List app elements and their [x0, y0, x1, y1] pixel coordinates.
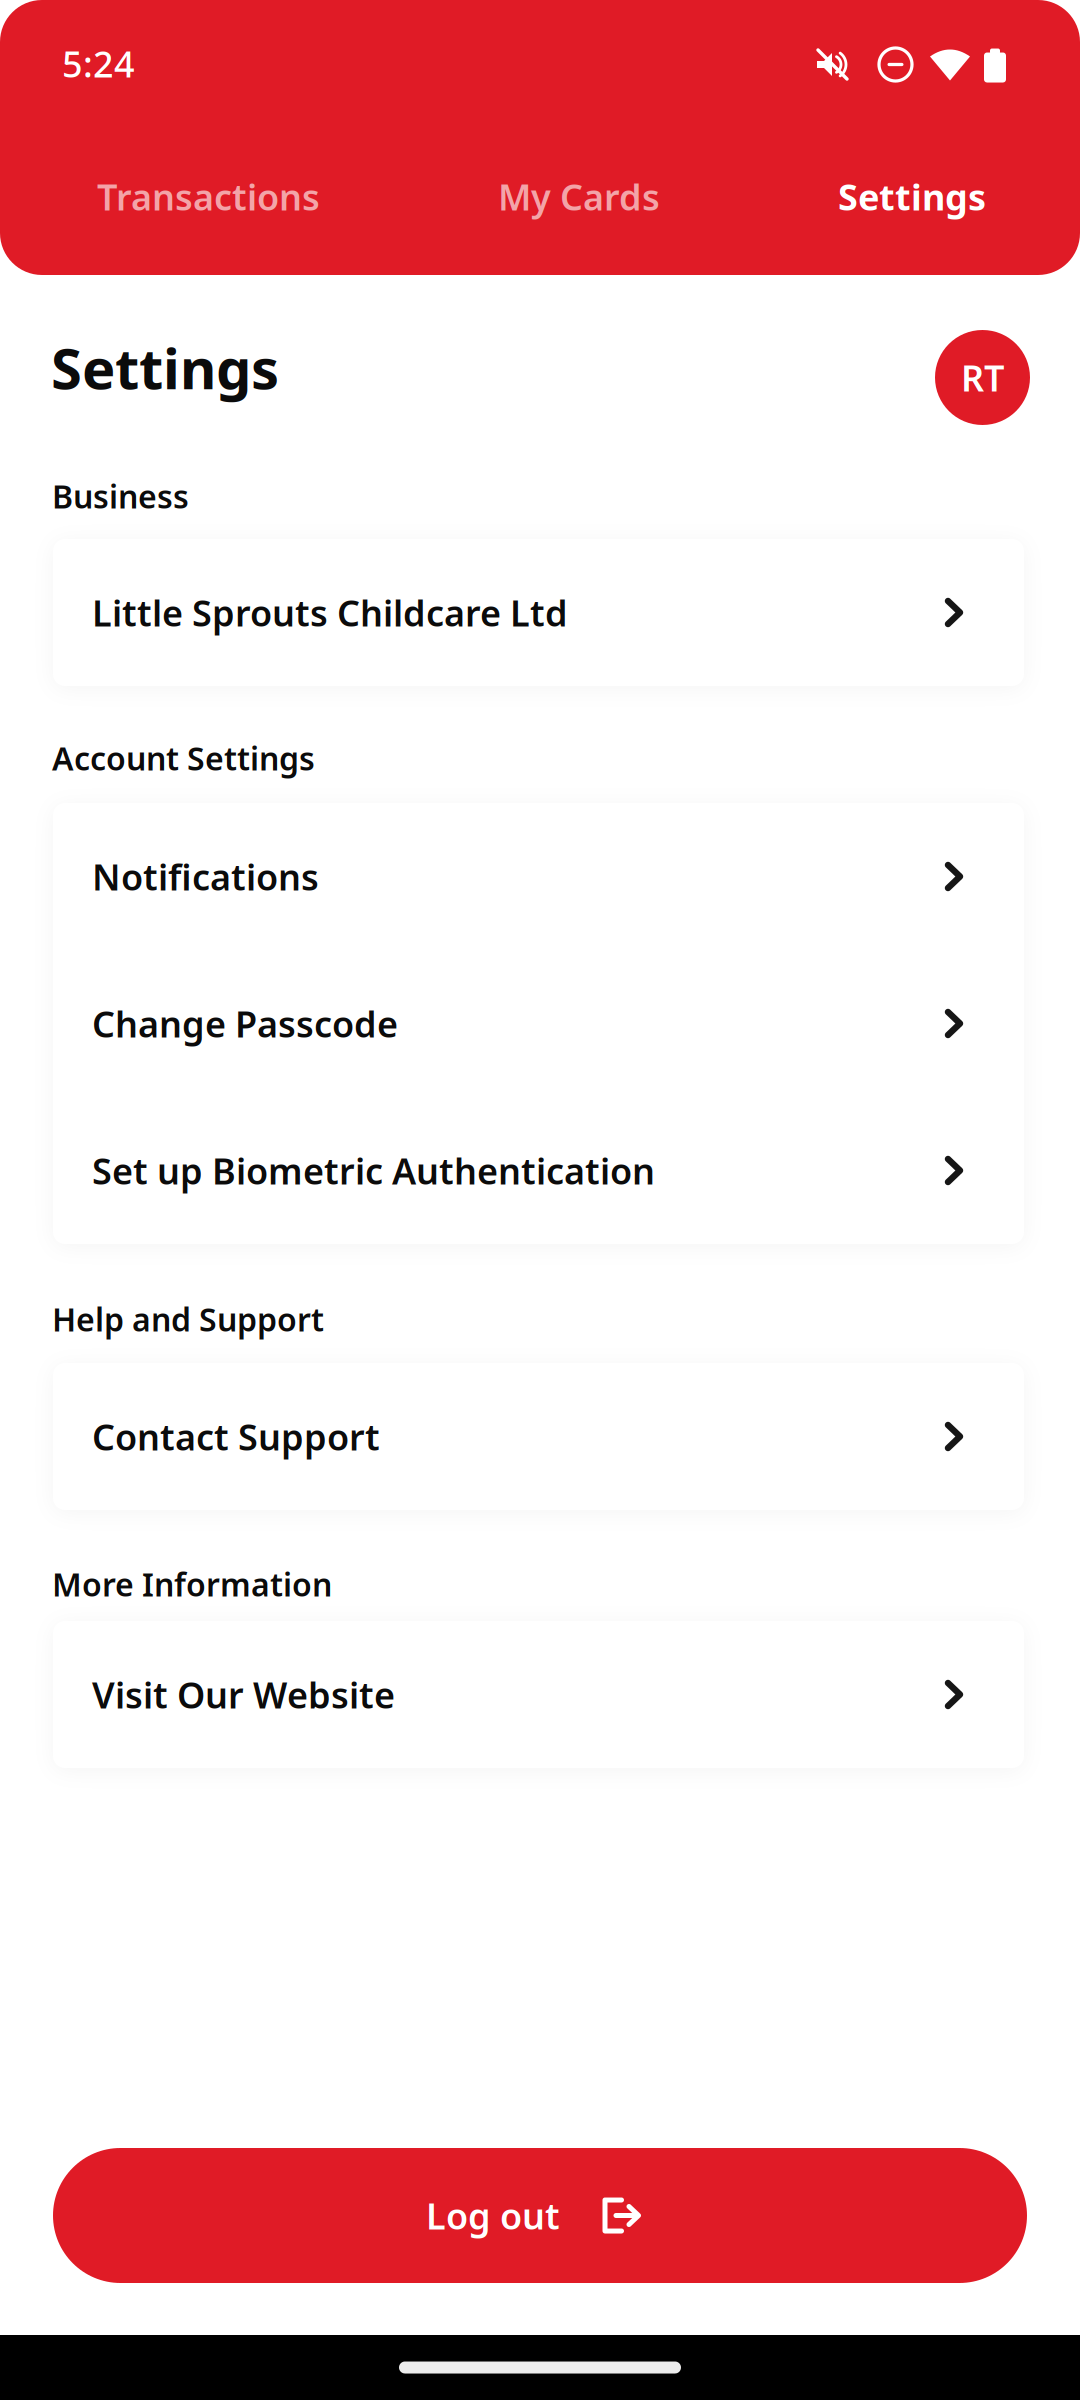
staticText: Little Sprouts Childcare Ltd [92, 589, 568, 636]
button[interactable]: Contact Support [53, 1363, 1024, 1510]
staticText: RT [961, 354, 1004, 401]
button[interactable]: Transactions [97, 125, 320, 267]
button[interactable]: Log out [53, 2148, 1027, 2283]
staticText: Change Passcode [92, 1000, 398, 1047]
button[interactable]: Visit Our Website [53, 1621, 1024, 1768]
button[interactable]: Profile [935, 320, 1030, 415]
staticText: More Information [52, 1563, 332, 1605]
staticText: 5:24 [62, 40, 135, 87]
button[interactable]: Change Passcode [53, 950, 1024, 1097]
button[interactable]: My Cards [498, 125, 660, 267]
staticText: Settings [838, 173, 986, 220]
button[interactable]: Notifications [53, 803, 1024, 950]
staticText: Business [52, 475, 189, 517]
staticText: Contact Support [92, 1413, 380, 1460]
button[interactable]: Settings [838, 125, 986, 267]
staticText: My Cards [498, 173, 660, 220]
staticText: Log out [426, 2192, 560, 2239]
staticText: Transactions [97, 173, 320, 220]
staticText: Account Settings [52, 737, 315, 779]
button[interactable]: Little Sprouts Childcare Ltd [53, 539, 1024, 686]
staticText: Set up Biometric Authentication [92, 1147, 655, 1194]
staticText: Notifications [92, 853, 319, 900]
staticText: Help and Support [52, 1298, 324, 1340]
staticText: Visit Our Website [92, 1671, 395, 1718]
staticText: Settings [51, 330, 279, 405]
button[interactable]: Set up Biometric Authentication [53, 1097, 1024, 1244]
